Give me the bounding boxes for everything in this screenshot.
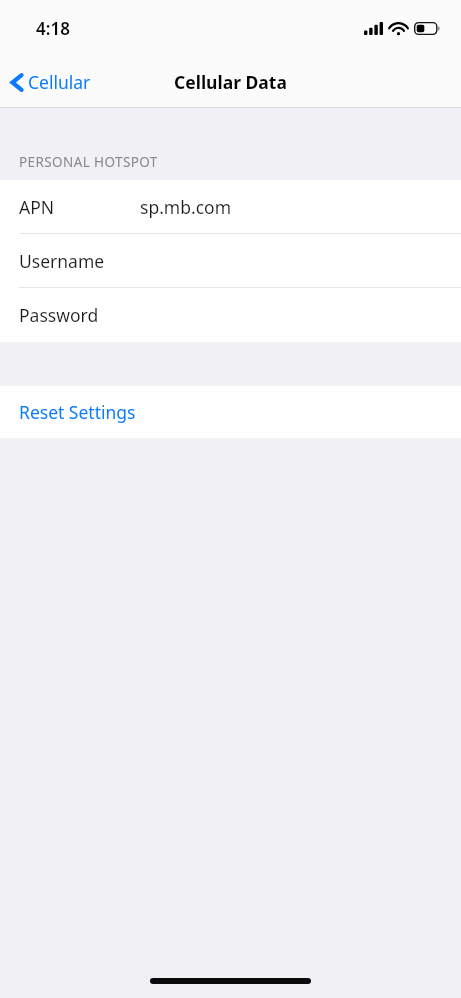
button[interactable]: Password [0,288,461,342]
staticText: Cellular [28,70,91,94]
staticText: Username [19,249,105,273]
staticText: APN [19,195,55,219]
staticText: Password [19,303,99,327]
button[interactable]: Reset Settings [0,386,461,438]
button[interactable]: APN [0,180,461,234]
button[interactable]: Back to Cellular [0,56,101,108]
staticText: Cellular Data [174,70,287,94]
staticText: sp.mb.com [140,195,231,219]
button[interactable]: Username [0,234,461,288]
staticText: 4:18 [36,17,70,40]
staticText: PERSONAL HOTSPOT [19,153,158,171]
staticText: Reset Settings [19,400,136,424]
